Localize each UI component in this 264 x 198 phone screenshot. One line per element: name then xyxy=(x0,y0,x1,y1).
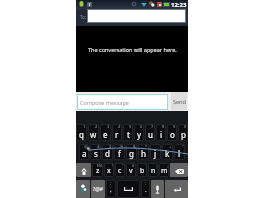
staticText: b xyxy=(140,166,145,176)
staticText: 9 xyxy=(173,124,176,129)
button[interactable]: 9 xyxy=(167,124,177,141)
staticText: d xyxy=(105,148,110,159)
button[interactable]: 7 xyxy=(145,124,155,141)
button[interactable]: Voice input xyxy=(151,180,164,198)
staticText: c xyxy=(118,166,122,176)
button[interactable]: Enter xyxy=(165,180,188,198)
button[interactable]: ?@# xyxy=(91,180,105,198)
staticText: 7 xyxy=(151,124,154,129)
staticText: Compose message xyxy=(80,99,129,106)
staticText: h xyxy=(141,148,146,159)
staticText: @ xyxy=(84,144,88,149)
button[interactable]: : xyxy=(148,163,158,177)
button[interactable]: Keyboard settings xyxy=(76,180,90,198)
button[interactable]: " xyxy=(115,163,125,177)
button[interactable]: Delete xyxy=(170,163,188,177)
button[interactable]: ; xyxy=(106,180,116,198)
staticText: . xyxy=(145,186,147,194)
staticText: o xyxy=(170,129,175,140)
button[interactable]: @ xyxy=(79,144,89,160)
staticText: k xyxy=(165,148,170,159)
button[interactable]: " xyxy=(174,144,185,160)
staticText: 2 xyxy=(95,124,98,129)
button[interactable]: - xyxy=(150,144,161,160)
staticText: n xyxy=(151,166,156,176)
staticText: ; xyxy=(110,180,112,186)
button[interactable]: & xyxy=(126,144,137,160)
staticText: 0 xyxy=(184,124,187,129)
staticText: " xyxy=(122,163,124,168)
staticText: 1 xyxy=(83,124,86,129)
button[interactable]: Space xyxy=(117,180,140,198)
staticText: % xyxy=(120,144,124,149)
button[interactable]: 4 xyxy=(112,124,122,141)
button[interactable]: 3 xyxy=(100,124,111,141)
staticText: + xyxy=(169,144,172,149)
button[interactable]: : xyxy=(141,180,150,198)
staticText: ' xyxy=(145,163,146,168)
staticText: g xyxy=(129,148,134,159)
button[interactable]: EN xyxy=(92,163,103,177)
staticText: x xyxy=(107,166,111,176)
staticText: w xyxy=(90,129,97,140)
button[interactable]: 6 xyxy=(134,124,144,141)
staticText: 5 xyxy=(129,124,132,129)
staticText: 6 xyxy=(140,124,143,129)
button[interactable]: ' xyxy=(137,163,147,177)
staticText: y xyxy=(137,129,142,140)
staticText: # xyxy=(132,163,135,168)
staticText: 8 xyxy=(162,124,165,129)
staticText: ; xyxy=(167,163,168,168)
staticText: - xyxy=(158,144,160,149)
button[interactable]: * xyxy=(138,144,149,160)
button[interactable]: ! xyxy=(104,163,114,177)
button[interactable]: Compose message xyxy=(78,95,167,109)
staticText: To: xyxy=(80,14,87,20)
staticText: : xyxy=(156,163,157,168)
staticText: t xyxy=(127,129,130,140)
staticText: q xyxy=(79,129,84,140)
staticText: i xyxy=(160,129,163,140)
button[interactable]: ; xyxy=(159,163,169,177)
button[interactable]: % xyxy=(114,144,125,160)
staticText: p xyxy=(181,129,186,140)
staticText: a xyxy=(82,148,87,159)
staticText: f xyxy=(118,148,121,159)
button[interactable]: 0 xyxy=(178,124,188,141)
button[interactable]: 8 xyxy=(156,124,166,141)
button[interactable]: 1 xyxy=(76,124,87,141)
staticText: e xyxy=(103,129,108,140)
staticText: z xyxy=(96,166,100,176)
staticText: $ xyxy=(109,144,112,149)
staticText: l xyxy=(178,148,181,159)
staticText: s xyxy=(94,148,98,159)
staticText: m xyxy=(161,166,168,176)
button[interactable]: Send xyxy=(171,92,187,110)
staticText: 3 xyxy=(107,124,110,129)
button[interactable]: + xyxy=(162,144,173,160)
staticText: 4 xyxy=(118,124,121,129)
button[interactable]: Shift xyxy=(76,163,91,177)
staticText: Send xyxy=(173,98,186,105)
staticText: ?@# xyxy=(93,186,103,193)
staticText: j xyxy=(154,148,157,159)
button[interactable]: $ xyxy=(102,144,113,160)
staticText: * xyxy=(145,144,148,149)
staticText: EN xyxy=(97,163,102,168)
staticText: " xyxy=(182,144,184,149)
button[interactable]: 2 xyxy=(88,124,99,141)
button[interactable]: 5 xyxy=(123,124,133,141)
staticText: v xyxy=(129,166,133,176)
staticText: : xyxy=(145,180,147,186)
staticText: , xyxy=(110,186,112,194)
staticText: ! xyxy=(112,163,113,168)
staticText: The conversation will appear here. xyxy=(88,46,177,53)
button[interactable]: # xyxy=(90,144,101,160)
staticText: 12:23 xyxy=(171,1,187,9)
staticText: # xyxy=(97,144,100,149)
staticText: u xyxy=(148,129,153,140)
staticText: r xyxy=(115,129,119,140)
button[interactable]: # xyxy=(126,163,136,177)
staticText: & xyxy=(133,144,136,149)
